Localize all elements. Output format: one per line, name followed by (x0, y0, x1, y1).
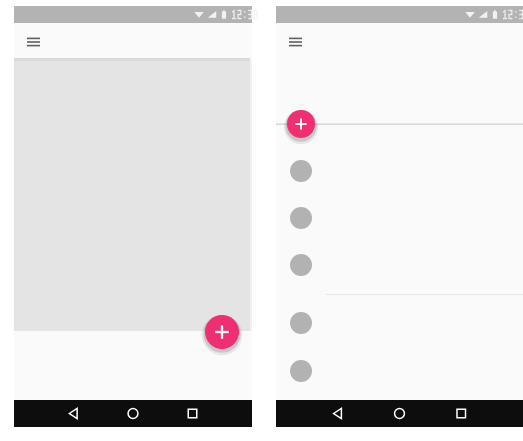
button[interactable]: Add (287, 110, 315, 138)
button[interactable] (276, 300, 523, 346)
button[interactable] (276, 242, 523, 288)
button[interactable] (276, 195, 523, 241)
button[interactable]: Open navigation menu (276, 23, 318, 64)
button[interactable] (276, 148, 523, 194)
button[interactable]: Open navigation menu (14, 23, 56, 64)
button[interactable] (276, 348, 523, 394)
button[interactable]: Add (205, 315, 239, 349)
